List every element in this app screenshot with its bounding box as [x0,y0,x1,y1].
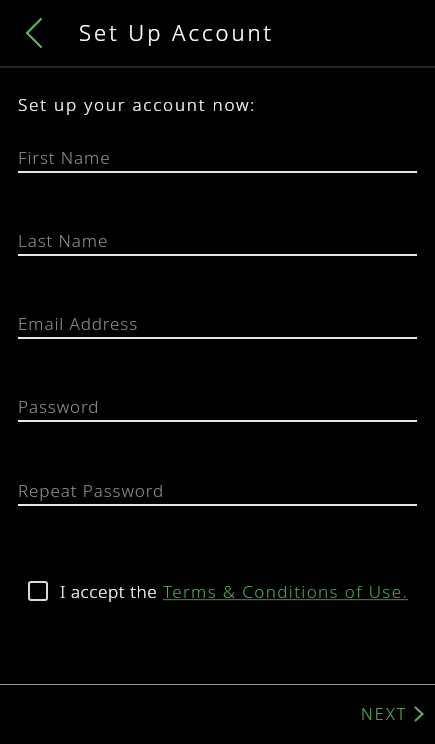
staticText: Email Address [18,312,139,335]
button[interactable]: NEXT [361,698,423,730]
staticText: I accept the [60,580,163,603]
button[interactable]: Password [18,392,417,422]
button[interactable]: Last Name [18,226,417,256]
staticText: Repeat Password [18,479,165,502]
button[interactable]: First Name [18,143,417,173]
staticText: Password [18,395,100,418]
button[interactable] [10,9,58,57]
button[interactable]: Terms & Conditions of Use. [163,580,409,603]
staticText: Last Name [18,229,109,252]
staticText: First Name [18,146,111,169]
button[interactable]: Email Address [18,309,417,339]
staticText: NEXT [361,703,408,725]
staticText: Set Up Account [79,17,275,47]
button[interactable]: Repeat Password [18,476,417,506]
button[interactable]: I accept the [28,577,409,605]
staticText: Set up your account now: [18,93,257,116]
